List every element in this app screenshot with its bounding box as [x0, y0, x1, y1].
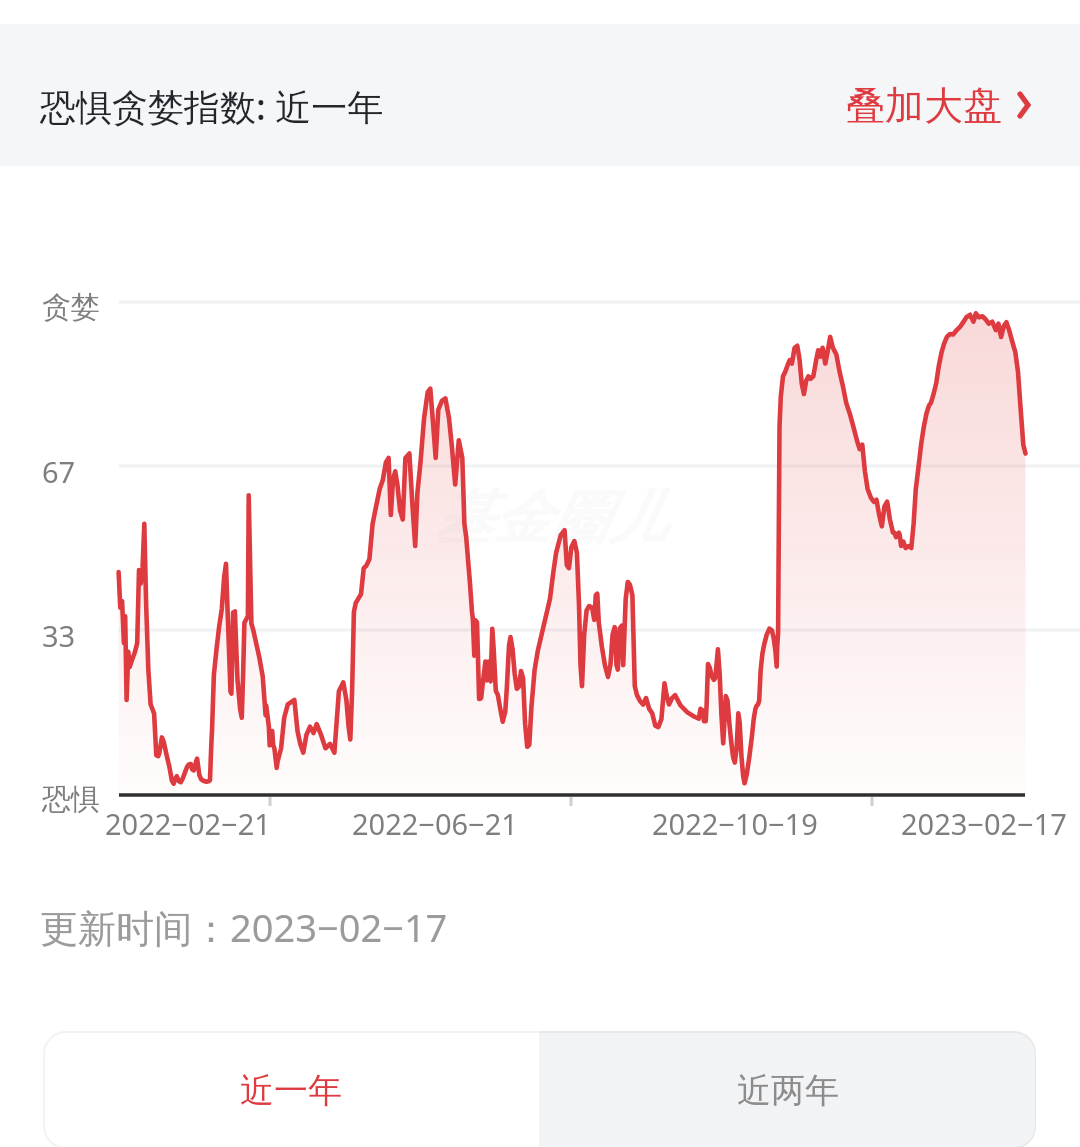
staticText: 恐惧	[42, 781, 100, 818]
staticText: 更新时间：2023−02−17	[40, 901, 448, 953]
staticText: 叠加大盘	[846, 81, 1002, 130]
staticText: 基金圈儿	[434, 482, 666, 555]
button[interactable]: 近两年	[539, 1031, 1036, 1147]
staticText: 2023−02−17	[901, 804, 1067, 843]
button[interactable]: 叠加大盘	[838, 70, 1039, 140]
staticText: 2022−10−19	[652, 804, 818, 843]
staticText: 33	[42, 616, 76, 655]
staticText: 2022−06−21	[352, 804, 518, 843]
staticText: 恐惧贪婪指数: 近一年	[40, 82, 384, 131]
other: Overlay market index	[1017, 91, 1031, 119]
staticText: 2022−02−21	[105, 804, 271, 843]
staticText: 67	[42, 452, 76, 491]
staticText: 近一年	[240, 1069, 342, 1112]
button[interactable]: 近一年	[43, 1031, 539, 1147]
staticText: 近两年	[737, 1069, 839, 1112]
staticText: 贪婪	[42, 289, 100, 326]
